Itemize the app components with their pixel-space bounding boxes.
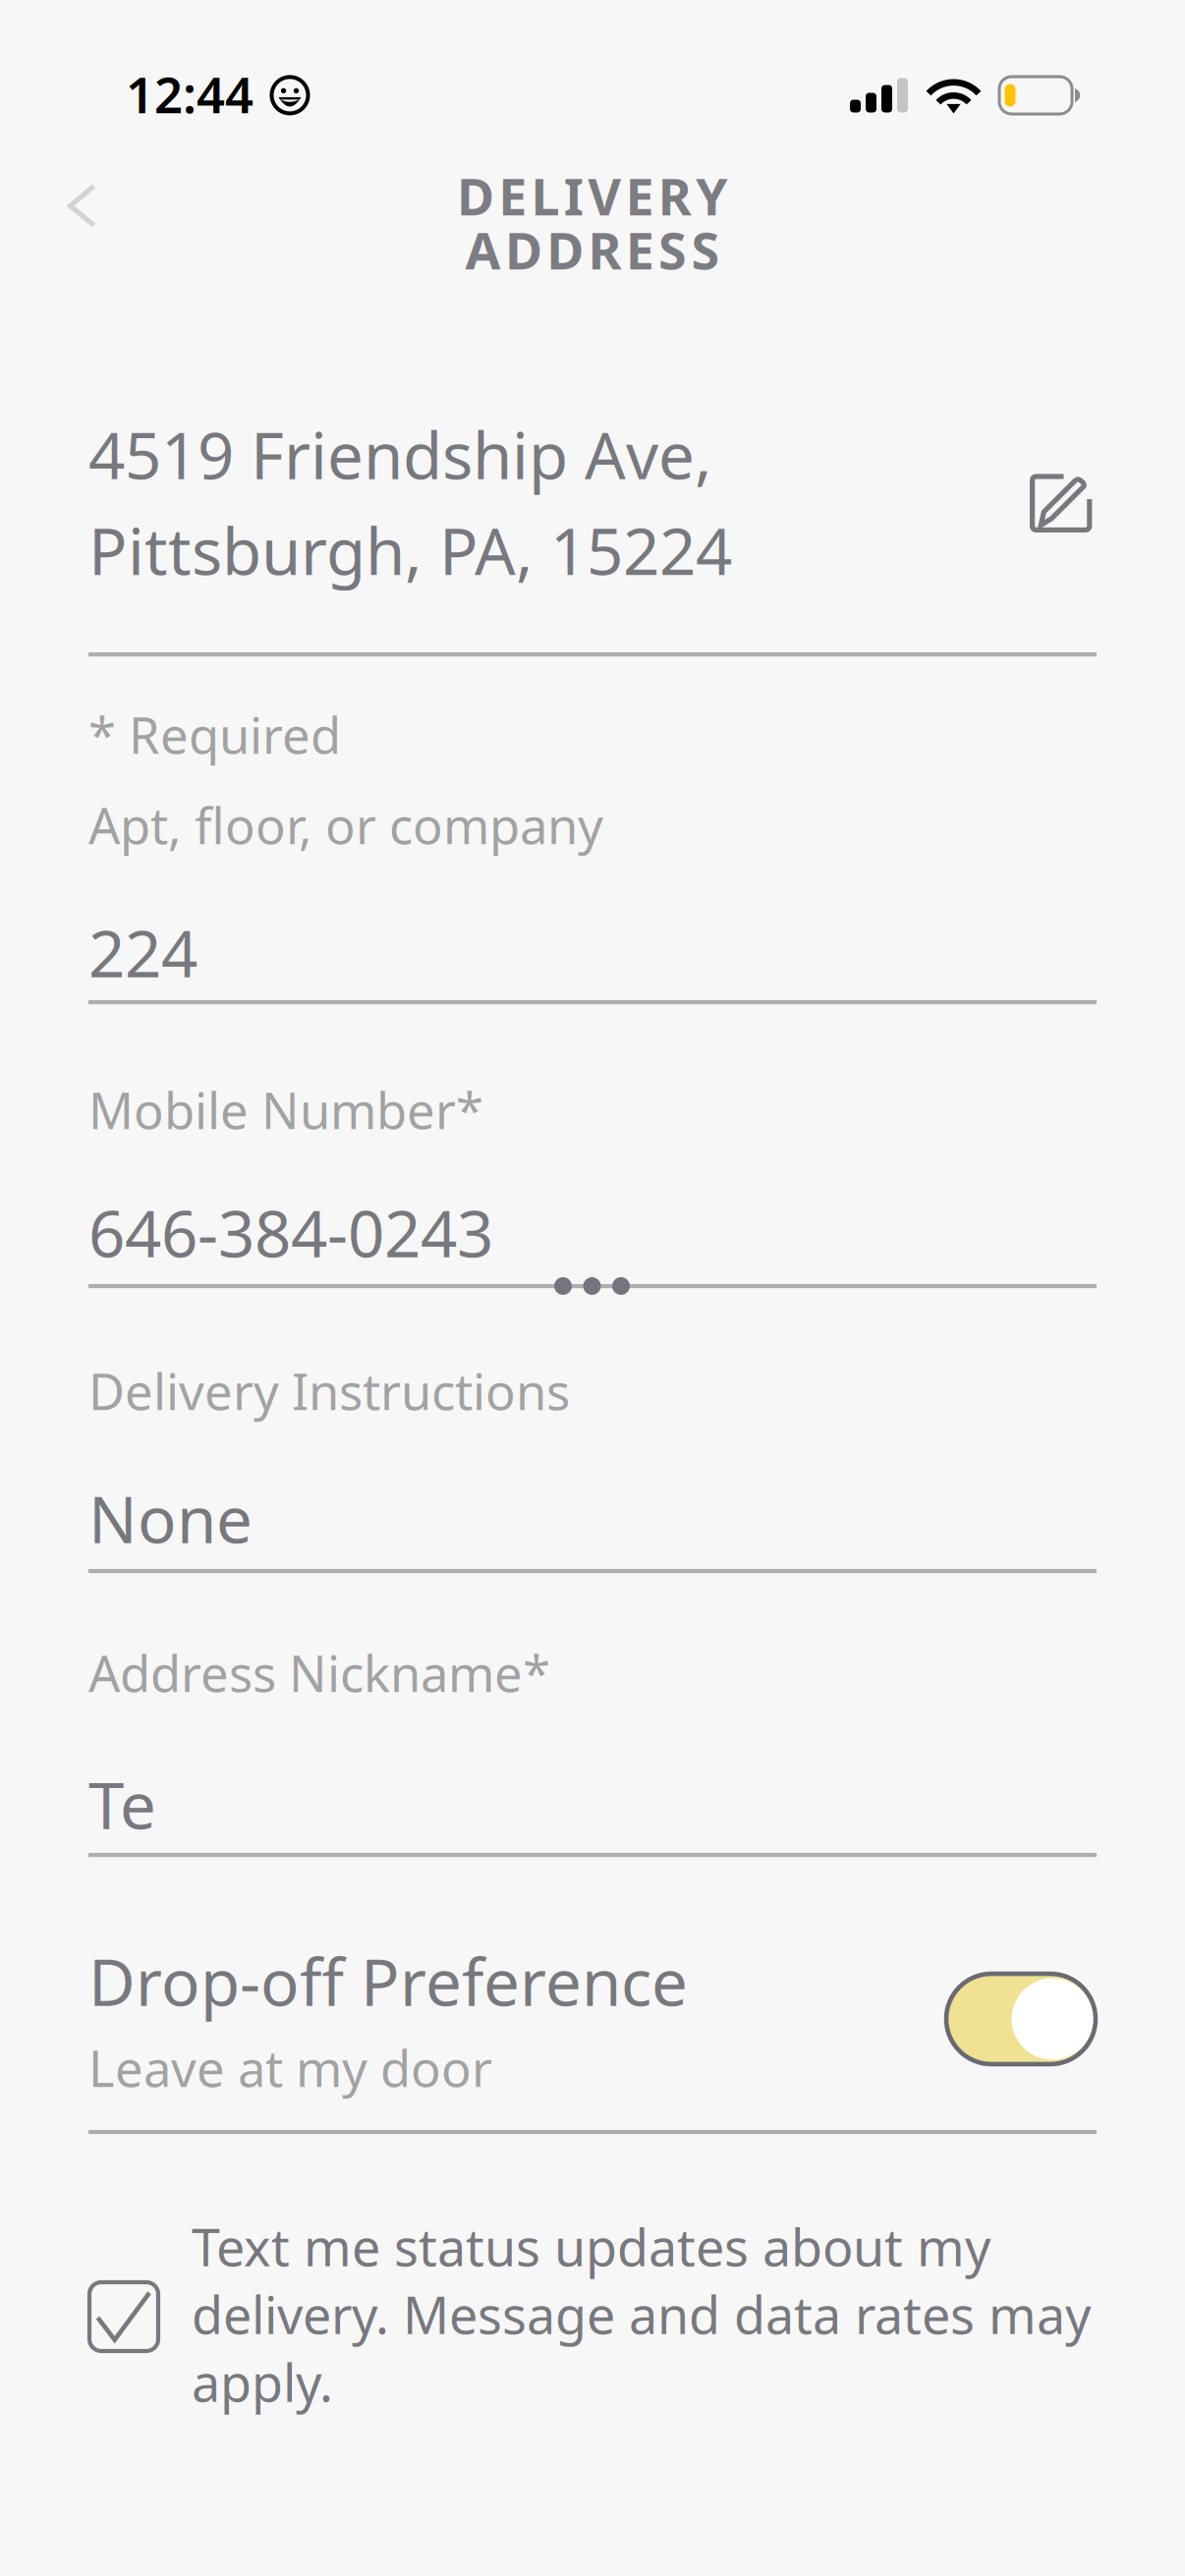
staticText: Address Nickname* xyxy=(88,1640,550,1706)
staticText: Leave at my door xyxy=(88,2035,492,2101)
staticText: Drop-off Preference xyxy=(88,1938,688,2024)
staticText: Text me status updates about my delivery… xyxy=(192,2212,1092,2416)
staticText: Pittsburgh, PA, 15224 xyxy=(88,508,732,593)
button[interactable]: Drop-off preference xyxy=(946,1974,1096,2064)
staticText: DELIVERY xyxy=(457,162,728,230)
staticText: 224 xyxy=(88,910,197,995)
staticText: 12:44 xyxy=(126,61,254,127)
button[interactable]: Edit address xyxy=(1030,469,1093,533)
staticText: 646-384-0243 xyxy=(88,1190,493,1275)
staticText: Mobile Number* xyxy=(88,1077,483,1143)
staticText: Delivery Instructions xyxy=(88,1358,570,1424)
staticText: 4519 Friendship Ave, xyxy=(88,412,712,497)
button[interactable]: Back xyxy=(44,160,120,252)
staticText: * Required xyxy=(88,701,341,768)
staticText: Te xyxy=(88,1762,156,1847)
staticText: ADDRESS xyxy=(465,216,720,284)
staticText: Apt, floor, or company xyxy=(88,792,603,858)
staticText: None xyxy=(88,1476,253,1561)
button[interactable]: Text me status updates about my delivery… xyxy=(88,2212,1174,2416)
